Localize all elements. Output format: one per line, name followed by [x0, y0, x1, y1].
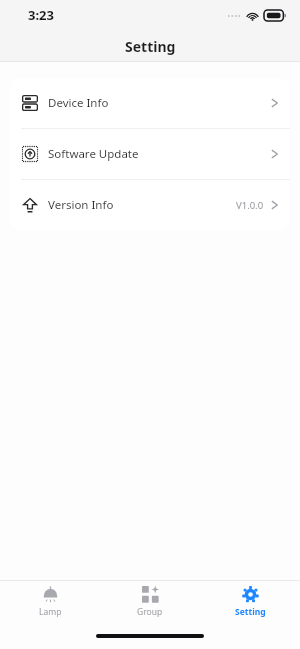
staticText: Software Update — [48, 146, 139, 162]
staticText: Group — [137, 606, 163, 618]
staticText: Setting — [125, 37, 176, 56]
button[interactable]: Group — [100, 581, 200, 623]
staticText: Setting — [235, 606, 266, 618]
button[interactable]: Device Info — [10, 78, 290, 128]
button[interactable]: Version Info — [10, 180, 290, 230]
button[interactable]: Setting — [200, 581, 300, 623]
staticText: 3:23 — [28, 6, 54, 24]
button[interactable]: Software Update — [10, 129, 290, 179]
staticText: Version Info — [48, 197, 114, 213]
button[interactable]: Lamp — [0, 581, 100, 623]
staticText: Lamp — [39, 606, 62, 618]
staticText: Device Info — [48, 95, 109, 111]
staticText: V1.0.0 — [236, 199, 264, 212]
